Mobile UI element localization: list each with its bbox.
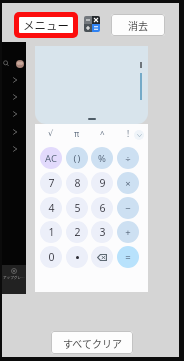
other: Expand <box>13 111 17 117</box>
button[interactable]: π <box>66 125 88 142</box>
button[interactable]: 8 <box>66 172 88 194</box>
staticText: = <box>125 251 131 264</box>
button[interactable] <box>66 246 88 268</box>
button[interactable]: Calculator <box>84 16 100 32</box>
staticText: アップグレ… <box>3 275 25 280</box>
button[interactable]: アップグレ… <box>2 265 26 294</box>
other: Search <box>3 60 9 67</box>
staticText: メニュー <box>23 17 69 33</box>
button[interactable]: ^ <box>91 125 113 142</box>
button[interactable]: 6 <box>91 197 113 219</box>
staticText: 3 <box>99 225 106 239</box>
button[interactable]: () <box>66 147 88 169</box>
button[interactable]: More functions <box>134 130 144 140</box>
other: Expand <box>13 77 17 83</box>
button[interactable]: メニュー <box>19 17 73 33</box>
staticText: 8 <box>74 176 81 190</box>
staticText: ^ <box>100 128 105 139</box>
other: Expand <box>13 94 17 100</box>
staticText: 2 <box>74 225 81 239</box>
staticText: AC <box>45 152 57 165</box>
staticText: − <box>125 202 131 215</box>
staticText: 5 <box>74 201 81 215</box>
button[interactable]: ÷ <box>117 147 139 169</box>
staticText: + <box>125 226 131 239</box>
button[interactable]: 7 <box>40 172 62 194</box>
staticText: ! <box>127 128 130 139</box>
button[interactable] <box>91 246 113 268</box>
button[interactable]: + <box>117 221 139 243</box>
button[interactable]: 消去 <box>111 14 165 36</box>
button[interactable]: 2 <box>66 221 88 243</box>
button[interactable]: √ <box>40 125 62 142</box>
other: Expand <box>13 129 17 135</box>
staticText: √ <box>48 129 54 138</box>
button[interactable]: 4 <box>40 197 62 219</box>
staticText: 4 <box>48 201 55 215</box>
button[interactable]: 0 <box>40 246 62 268</box>
button[interactable]: AC <box>40 147 62 169</box>
staticText: × <box>125 177 131 190</box>
staticText: 6 <box>99 201 106 215</box>
button[interactable]: ! <box>117 125 139 142</box>
staticText: 9 <box>99 176 106 190</box>
staticText: ÷ <box>125 152 131 165</box>
button[interactable]: Account <box>16 60 24 68</box>
button[interactable]: 1 <box>40 221 62 243</box>
button[interactable]: 5 <box>66 197 88 219</box>
button[interactable]: 3 <box>91 221 113 243</box>
button[interactable]: % <box>91 147 113 169</box>
staticText: 0 <box>48 250 55 264</box>
button[interactable]: = <box>117 246 139 268</box>
button[interactable]: 9 <box>91 172 113 194</box>
staticText: 消去 <box>128 18 148 32</box>
button[interactable]: × <box>117 172 139 194</box>
staticText: すべてクリア <box>63 336 122 350</box>
staticText: () <box>73 152 82 165</box>
other: Expand <box>13 146 17 152</box>
staticText: π <box>74 128 80 139</box>
staticText: 1 <box>48 225 55 239</box>
staticText: % <box>98 152 106 165</box>
staticText: 7 <box>48 176 55 190</box>
button[interactable]: − <box>117 197 139 219</box>
button[interactable]: すべてクリア <box>51 331 133 354</box>
